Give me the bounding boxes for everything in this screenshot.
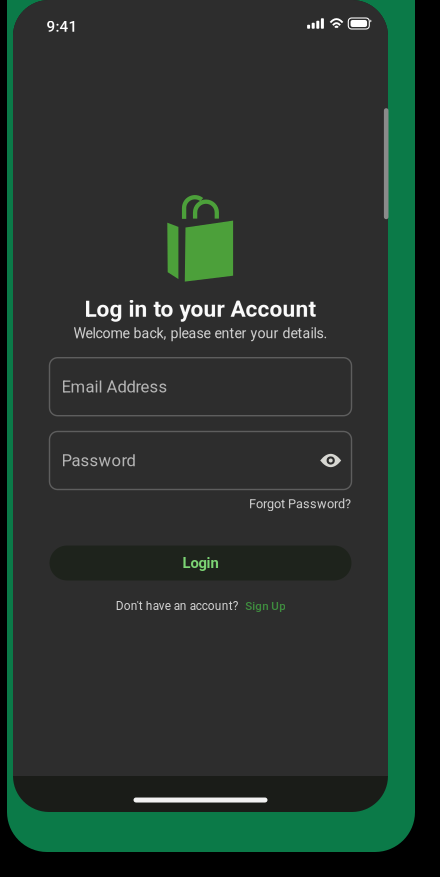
staticText: Password [61, 451, 135, 470]
staticText: Don't have an account? [116, 599, 239, 613]
staticText: Sign Up [245, 599, 285, 613]
button[interactable]: Login [49, 545, 351, 580]
button[interactable]: Forgot Password? [241, 495, 351, 513]
staticText: 9:41 [46, 18, 77, 35]
staticText: Welcome back, please enter your details. [73, 325, 327, 342]
staticText: Log in to your Account [84, 296, 316, 322]
button[interactable]: Sign Up [245, 599, 285, 613]
staticText: Login [182, 554, 218, 572]
staticText: Forgot Password? [249, 497, 351, 511]
staticText: Email Address [61, 377, 167, 396]
button[interactable]: Show password [319, 445, 343, 475]
